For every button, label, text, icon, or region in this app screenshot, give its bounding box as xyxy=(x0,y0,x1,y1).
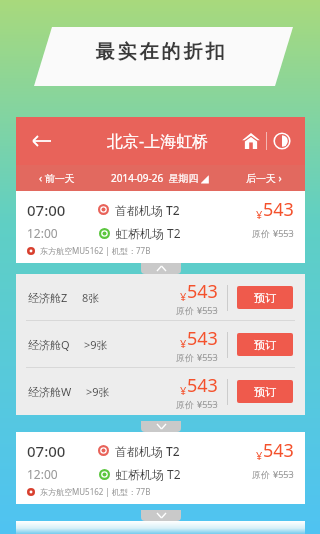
staticText: 543 xyxy=(263,438,294,463)
staticText: ¥553 xyxy=(197,351,218,363)
button[interactable]: 预订 xyxy=(237,380,293,403)
staticText: ¥553 xyxy=(197,398,218,410)
staticText: 2014-09-26 星期四 ◢ xyxy=(111,171,209,185)
staticText: ¥553 xyxy=(273,227,294,239)
staticText: ‹ 前一天 xyxy=(39,171,75,185)
staticText: ¥ xyxy=(180,289,187,304)
staticText: 原价 xyxy=(176,304,197,316)
staticText: ¥ xyxy=(256,448,263,463)
staticText: 北京-上海虹桥 xyxy=(107,130,209,152)
staticText: 预订 xyxy=(254,291,276,305)
button[interactable]: Back xyxy=(22,121,62,161)
staticText: 东方航空MU5162 | 机型：77B xyxy=(40,245,151,256)
staticText: 8张 xyxy=(82,290,100,305)
button[interactable]: 07:00 xyxy=(16,191,305,263)
button[interactable]: 07:00 xyxy=(16,521,305,534)
staticText: 原价 xyxy=(252,468,273,480)
staticText: 12:00 xyxy=(27,225,58,241)
staticText: >9张 xyxy=(86,384,110,399)
button[interactable]: 后一天 › xyxy=(222,165,305,191)
staticText: 首都机场 T2 xyxy=(115,202,180,218)
button[interactable]: Home xyxy=(236,126,266,156)
staticText: 最实在的折扣 xyxy=(94,40,226,64)
staticText: 预订 xyxy=(254,338,276,352)
button[interactable]: 预订 xyxy=(237,333,293,356)
button[interactable]: Expand xyxy=(141,421,181,432)
staticText: 543 xyxy=(187,279,218,304)
staticText: ¥ xyxy=(256,207,263,222)
staticText: ¥553 xyxy=(197,304,218,316)
staticText: 经济舱W xyxy=(28,384,72,399)
staticText: 首都机场 T2 xyxy=(115,443,180,459)
staticText: 543 xyxy=(263,197,294,222)
staticText: 虹桥机场 T2 xyxy=(116,225,181,241)
staticText: 07:00 xyxy=(27,200,66,220)
staticText: >9张 xyxy=(84,337,108,352)
staticText: 07:00 xyxy=(27,441,66,461)
staticText: 经济舱Z xyxy=(28,290,68,305)
staticText: 543 xyxy=(187,326,218,351)
staticText: ¥ xyxy=(180,383,187,398)
staticText: 12:00 xyxy=(27,466,58,482)
button[interactable]: 07:00 xyxy=(16,432,305,504)
button[interactable]: Collapse xyxy=(141,263,181,274)
staticText: ¥ xyxy=(180,336,187,351)
button[interactable]: ‹ 前一天 xyxy=(16,165,98,191)
staticText: 原价 xyxy=(176,351,197,363)
button[interactable]: Expand xyxy=(141,510,181,521)
button[interactable]: 预订 xyxy=(237,286,293,309)
staticText: 虹桥机场 T2 xyxy=(116,466,181,482)
staticText: 预订 xyxy=(254,385,276,399)
button[interactable]: Night mode xyxy=(267,126,297,156)
button[interactable]: 2014-09-26 星期四 ◢ xyxy=(98,165,222,191)
staticText: 后一天 › xyxy=(246,171,282,185)
staticText: 543 xyxy=(187,373,218,398)
staticText: 原价 xyxy=(252,227,273,239)
staticText: 原价 xyxy=(176,398,197,410)
staticText: 东方航空MU5162 | 机型：77B xyxy=(40,486,151,497)
staticText: 经济舱Q xyxy=(28,337,70,352)
staticText: ¥553 xyxy=(273,468,294,480)
